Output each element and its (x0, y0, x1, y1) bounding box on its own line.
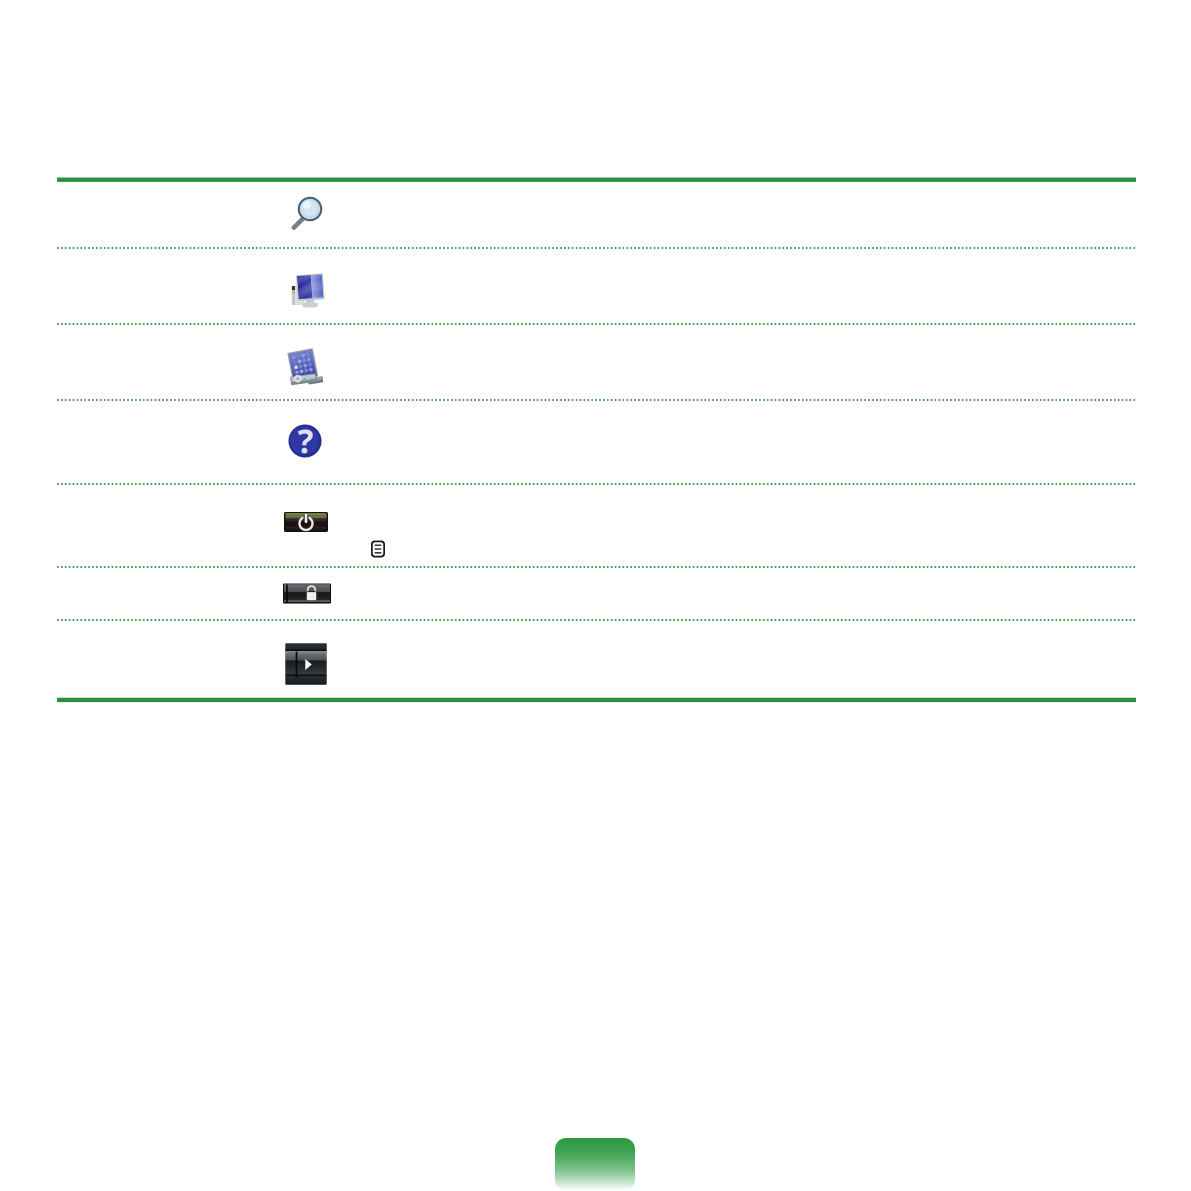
button[interactable]: Search (291, 190, 325, 234)
button[interactable]: Lock button (283, 583, 331, 603)
button[interactable]: Note (370, 539, 386, 558)
button[interactable]: Desktop computer (288, 270, 328, 310)
button[interactable]: Notebook computer (283, 347, 325, 389)
button[interactable]: Power button (284, 512, 328, 532)
button[interactable]: Help (287, 423, 323, 459)
staticText: ? (297, 418, 313, 463)
button[interactable]: Play button (285, 643, 326, 684)
